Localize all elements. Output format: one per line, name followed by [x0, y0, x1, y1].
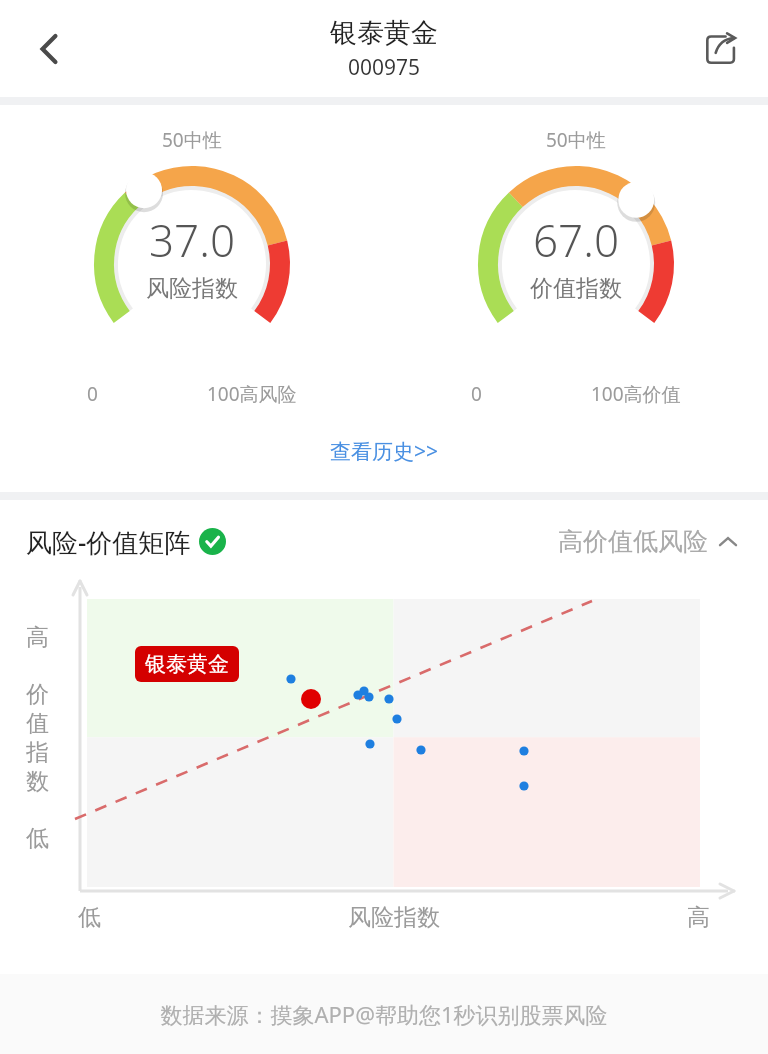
staticText: 银泰黄金 [330, 16, 438, 50]
staticText: 50中性 [546, 127, 606, 153]
staticText: 价值指数 [530, 274, 622, 303]
staticText: 37.0 [149, 210, 236, 270]
button[interactable]: 高价值低风险 [554, 522, 742, 561]
staticText: 000975 [348, 53, 421, 82]
staticText: 数据来源：摸象APP@帮助您1秒识别股票风险 [160, 999, 608, 1029]
staticText: 67.0 [533, 210, 620, 270]
staticText: 银泰黄金 [145, 651, 229, 677]
staticText: 低 [78, 903, 101, 932]
staticText: 值 [26, 709, 49, 738]
staticText: 100高价值 [591, 381, 681, 407]
staticText: 查看历史>> [330, 437, 439, 466]
button[interactable]: 查看历史>> [318, 433, 451, 470]
staticText: 高 [687, 903, 710, 932]
staticText: 0 [471, 381, 482, 407]
staticText: 风险指数 [146, 274, 238, 303]
button[interactable]: 银泰黄金 [135, 646, 239, 682]
staticText: 风险-价值矩阵 [26, 524, 191, 560]
staticText: 50中性 [162, 127, 222, 153]
staticText: 高价值低风险 [558, 526, 708, 557]
staticText: 0 [87, 381, 98, 407]
staticText: 低 [26, 824, 49, 853]
staticText: 数 [26, 767, 49, 796]
button[interactable]: Back [22, 21, 78, 77]
staticText: 指 [26, 738, 49, 767]
staticText: 100高风险 [207, 381, 297, 407]
staticText: 风险指数 [348, 903, 440, 932]
button[interactable]: Share [692, 20, 750, 78]
staticText: 价 [26, 680, 49, 709]
staticText: 高 [26, 623, 49, 652]
